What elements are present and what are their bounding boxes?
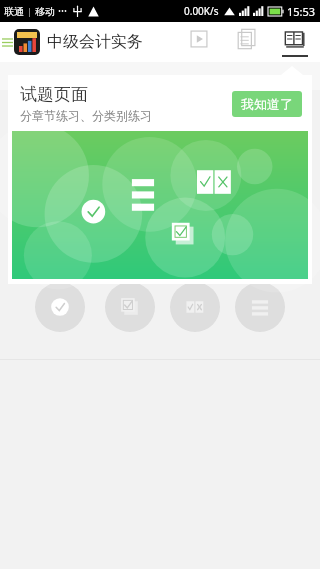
button[interactable]: Category practice [105, 282, 155, 332]
button[interactable]: Video [184, 22, 214, 62]
staticText: 0.00K/s [184, 4, 219, 18]
button[interactable]: Chapter practice [35, 282, 85, 332]
staticText: 15:53 [287, 4, 316, 19]
staticText: 我知道了 [241, 96, 293, 112]
staticText: 试题页面 [20, 84, 88, 105]
button[interactable]: List [235, 282, 285, 332]
button[interactable]: 我知道了 [232, 91, 302, 117]
staticText: 分章节练习、分类别练习 [20, 108, 152, 123]
button[interactable]: Right and wrong [170, 282, 220, 332]
button[interactable] [14, 29, 40, 55]
button[interactable]: Questions [280, 22, 310, 62]
button[interactable]: Notes [232, 22, 262, 62]
staticText: 移动 [35, 5, 55, 18]
staticText: | [27, 5, 32, 17]
button[interactable]: Menu [0, 22, 14, 62]
staticText: 中级会计实务 [47, 32, 143, 52]
staticText: 联通 [4, 5, 24, 18]
